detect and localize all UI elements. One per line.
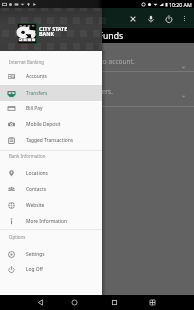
button[interactable]: Voice search xyxy=(144,8,157,29)
button[interactable]: Mobile Deposit xyxy=(0,116,102,132)
staticText: BANK xyxy=(39,30,55,37)
staticText: Transfers xyxy=(26,90,48,97)
button[interactable]: More Information xyxy=(0,213,102,229)
button[interactable]: Log Off xyxy=(0,261,102,277)
button[interactable]: Home xyxy=(67,295,81,310)
button[interactable]: Settings xyxy=(0,246,102,262)
staticText: Internet Banking xyxy=(9,59,44,65)
staticText: Accounts xyxy=(26,73,47,80)
button[interactable]: Close xyxy=(126,8,139,29)
button[interactable]: Transfers xyxy=(0,85,102,101)
staticText: Transfer Funds xyxy=(63,30,124,42)
staticText: Contacts xyxy=(26,186,47,193)
button[interactable]: Split screen xyxy=(145,295,159,310)
staticText: Locations xyxy=(26,170,48,177)
staticText: More Information xyxy=(26,218,68,225)
button[interactable]: Log off xyxy=(162,8,175,29)
staticText: Website xyxy=(26,202,45,209)
staticText: Bank Information xyxy=(9,153,46,159)
button[interactable]: Tagged Transactions xyxy=(0,132,102,148)
staticText: 10:20 AM xyxy=(169,1,192,8)
button[interactable]: Back xyxy=(33,295,47,310)
staticText: Settings xyxy=(26,251,45,258)
button[interactable]: Contacts xyxy=(0,181,102,197)
staticText: Options xyxy=(9,234,26,240)
button[interactable]: Website xyxy=(0,197,102,213)
staticText: Tagged Transactions xyxy=(26,137,74,144)
button[interactable]: More options xyxy=(178,8,191,29)
staticText: Bill Pay xyxy=(26,105,43,112)
staticText: Select a to account. xyxy=(75,57,135,66)
button[interactable]: Recent apps xyxy=(107,295,121,310)
button[interactable]: Accounts xyxy=(0,68,102,84)
button[interactable]: Locations xyxy=(0,165,102,181)
button[interactable]: Bill Pay xyxy=(0,100,102,116)
staticText: CITY STATE xyxy=(39,25,68,32)
staticText: Log Off xyxy=(26,266,43,273)
staticText: Select the number of transfers. xyxy=(17,87,113,96)
staticText: Mobile Deposit xyxy=(26,121,61,128)
